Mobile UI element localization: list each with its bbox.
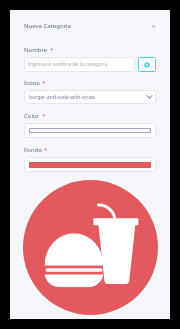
staticText: * [50, 46, 54, 54]
button[interactable] [24, 123, 156, 138]
staticText: Nombre [24, 46, 48, 54]
staticText: Color [24, 112, 40, 120]
button[interactable]: Seleccionar color [138, 57, 156, 72]
button[interactable] [24, 157, 156, 172]
staticText: * [44, 146, 48, 154]
button[interactable]: burger-and-soda-with-straw [24, 90, 156, 104]
staticText: * [42, 112, 46, 120]
staticText: burger-and-soda-with-straw [29, 94, 95, 101]
staticText: Fondo [24, 146, 42, 154]
staticText: Nueva Categoria [24, 22, 71, 30]
button[interactable]: Cerrar [148, 21, 159, 32]
button[interactable]: Ingresa el nombre de la categoria [24, 57, 135, 72]
staticText: Icono [24, 79, 40, 87]
staticText: Ingresa el nombre de la categoria [28, 61, 108, 68]
staticText: * [42, 79, 46, 87]
